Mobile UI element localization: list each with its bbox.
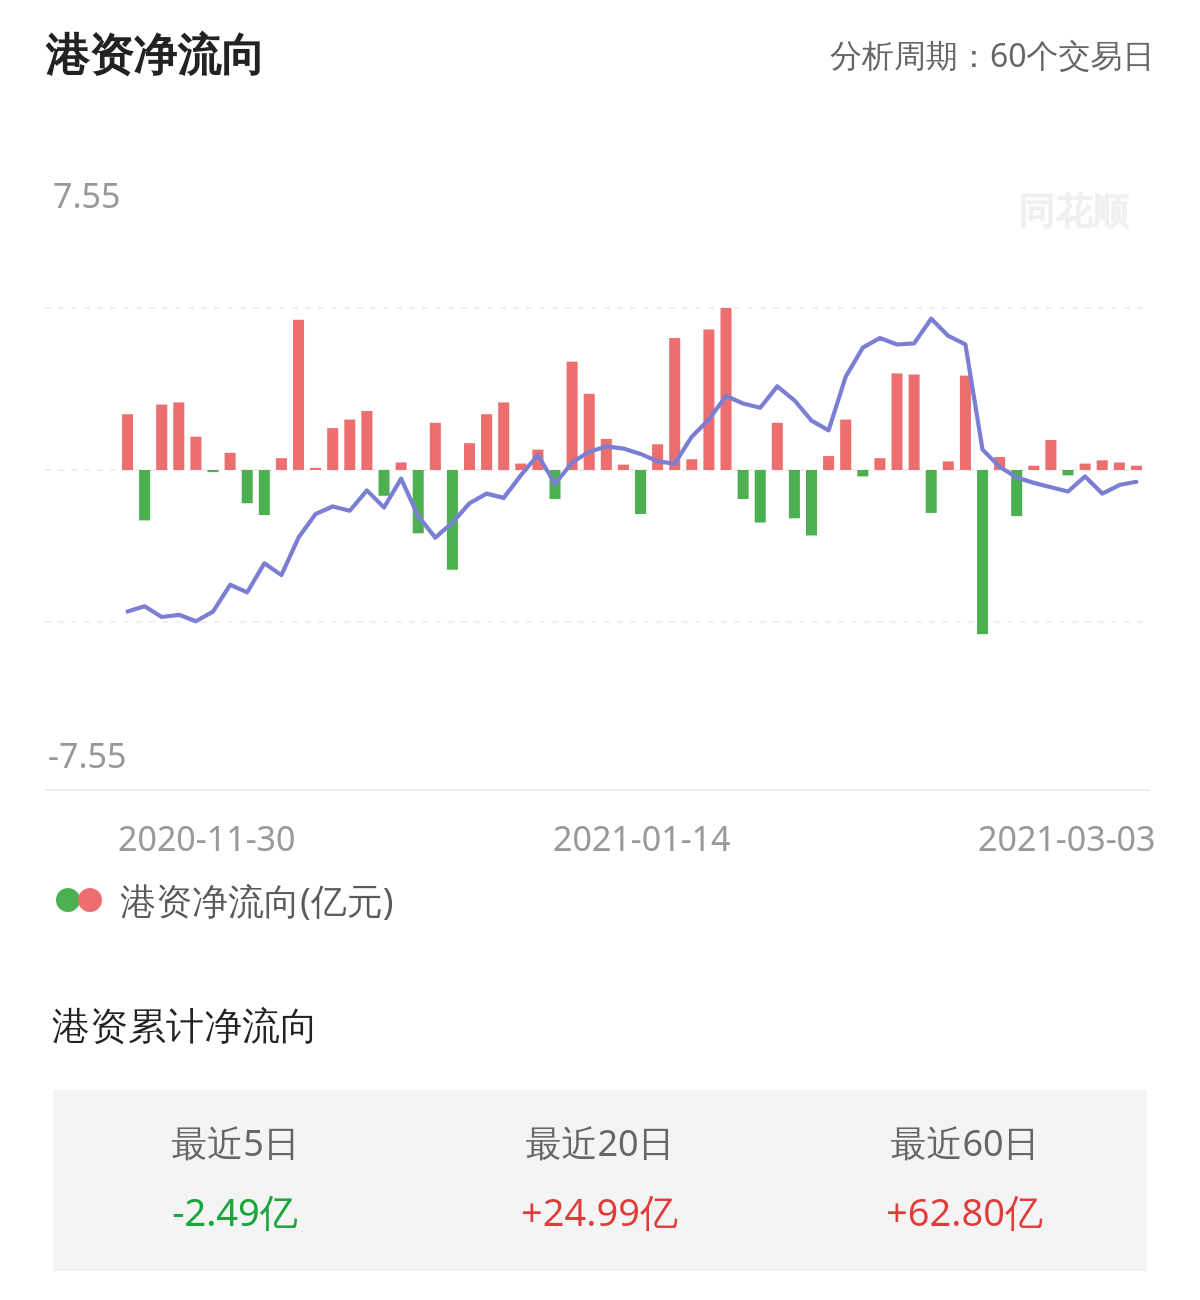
button[interactable]: 最近20日 [417, 1090, 782, 1271]
button[interactable]: 最近60日 [782, 1090, 1147, 1271]
staticText: 2020-11-30 [118, 815, 296, 861]
staticText: -2.49亿 [172, 1185, 298, 1237]
staticText: -7.55 [48, 732, 127, 778]
staticText: 最近60日 [890, 1118, 1040, 1167]
button[interactable]: 港资净流向(亿元) [0, 860, 1200, 940]
staticText: 2021-03-03 [978, 815, 1156, 861]
staticText: +62.80亿 [886, 1185, 1043, 1237]
button[interactable]: 最近5日 [53, 1090, 417, 1271]
staticText: 最近20日 [525, 1118, 675, 1167]
staticText: +24.99亿 [521, 1185, 678, 1237]
staticText: 7.55 [53, 172, 121, 218]
staticText: 2021-01-14 [553, 815, 731, 861]
staticText: 港资净流向(亿元) [120, 876, 394, 925]
staticText: 同花顺 [1018, 188, 1129, 235]
staticText: 最近5日 [171, 1118, 300, 1167]
staticText: 分析周期：60个交易日 [830, 33, 1155, 77]
staticText: 港资净流向 [45, 28, 265, 83]
staticText: 港资累计净流向 [52, 1002, 318, 1050]
